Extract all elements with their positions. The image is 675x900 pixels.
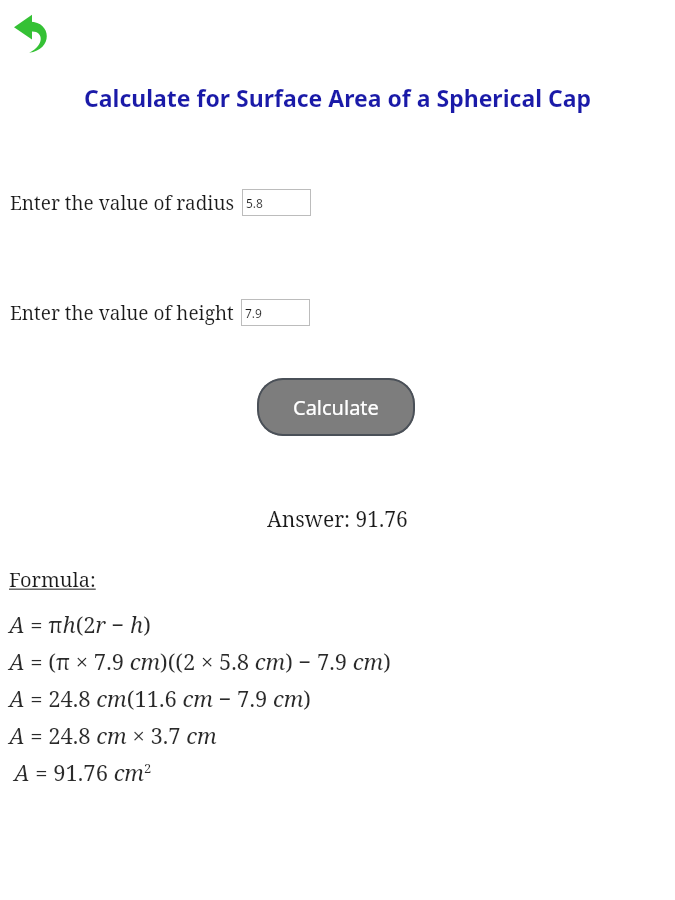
staticText: A = 91.76 cm2 bbox=[14, 757, 152, 787]
staticText: Calculate for Surface Area of a Spherica… bbox=[84, 82, 592, 113]
staticText: A = 24.8 cm × 3.7 cm bbox=[9, 720, 217, 750]
staticText: A = 24.8 cm(11.6 cm − 7.9 cm) bbox=[9, 683, 311, 713]
button[interactable]: 7.9 bbox=[241, 299, 310, 326]
staticText: Enter the value of radius bbox=[10, 190, 235, 216]
button[interactable]: Calculate bbox=[257, 378, 415, 436]
staticText: Calculate bbox=[293, 394, 379, 421]
staticText: Formula: bbox=[9, 566, 96, 593]
staticText: Enter the value of height bbox=[10, 300, 234, 326]
staticText: 5.8 bbox=[246, 195, 263, 211]
button[interactable]: 5.8 bbox=[242, 189, 311, 216]
button[interactable]: Back bbox=[10, 10, 58, 58]
staticText: A = πh(2r − h) bbox=[9, 609, 151, 639]
staticText: 7.9 bbox=[245, 305, 262, 321]
staticText: Answer: 91.76 bbox=[267, 505, 408, 534]
staticText: A = (π × 7.9 cm)((2 × 5.8 cm) − 7.9 cm) bbox=[9, 646, 391, 676]
